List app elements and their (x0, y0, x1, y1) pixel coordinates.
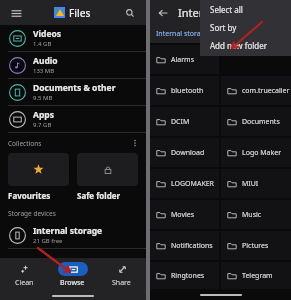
staticText: Music (242, 210, 262, 220)
staticText: Apps (33, 109, 54, 121)
staticText: Documents & other (33, 82, 116, 94)
staticText: Ringtones (171, 271, 205, 281)
button[interactable]: DCIM (150, 107, 219, 136)
staticText: Clean (15, 278, 34, 288)
staticText: Documents (242, 117, 280, 127)
button[interactable]: Telegram (221, 262, 291, 289)
button[interactable]: MIUI (221, 169, 291, 198)
staticText: Download (171, 148, 205, 158)
button[interactable]: Menu (8, 5, 24, 21)
staticText: Movies (171, 210, 195, 220)
button[interactable]: Add new folder (210, 36, 291, 54)
staticText: Favourites (8, 190, 51, 201)
staticText: Audio (33, 55, 58, 67)
staticText: Select all (210, 4, 243, 15)
staticText: Notifications (171, 241, 213, 251)
staticText: Add new folder (210, 40, 268, 51)
button[interactable]: Notifications (150, 231, 219, 260)
button[interactable]: Browse (48, 258, 97, 291)
staticText: com.truecaller (242, 86, 290, 96)
button[interactable]: Music (221, 200, 291, 229)
button[interactable]: Download (150, 138, 219, 167)
button[interactable]: Videos (0, 25, 146, 51)
button[interactable]: Pictures (221, 231, 291, 260)
staticText: MIUI (242, 179, 259, 189)
staticText: Collections (8, 139, 42, 148)
staticText: bluetooth (171, 86, 204, 96)
staticText: 9.7 GB (33, 121, 52, 129)
staticText: Internal s (178, 5, 228, 20)
button[interactable]: Movies (150, 200, 219, 229)
staticText: Internal storage (156, 29, 209, 39)
button[interactable]: Ringtones (150, 262, 219, 289)
staticText: 133 MB (33, 67, 55, 75)
staticText: Files (69, 6, 91, 20)
button[interactable]: Logo Maker (221, 138, 291, 167)
button[interactable]: Safe folder (77, 153, 138, 201)
staticText: Browse (60, 278, 85, 288)
button[interactable]: Documents & other (0, 79, 146, 105)
button[interactable]: Internal storage (0, 222, 146, 248)
staticText: Storage devices (8, 209, 56, 218)
button[interactable]: Audio (0, 52, 146, 78)
button[interactable]: Back (156, 6, 170, 20)
staticText: 21 GB free (33, 237, 63, 245)
staticText: LOGOMAKER (171, 179, 214, 189)
staticText: Videos (33, 28, 62, 40)
staticText: Share (112, 278, 131, 288)
button[interactable]: Favourites (8, 153, 69, 201)
staticText: Telegram (242, 271, 273, 281)
button[interactable]: Search (122, 5, 138, 21)
button[interactable]: LOGOMAKER (150, 169, 219, 198)
staticText: Logo Maker (242, 148, 282, 158)
staticText: 9.5 MB (33, 94, 53, 102)
staticText: Internal storage (33, 225, 103, 237)
button[interactable]: Clean (0, 258, 48, 291)
button[interactable]: Alarms (150, 45, 219, 74)
staticText: 1.4 GB (33, 40, 52, 48)
button[interactable]: Documents (221, 107, 291, 136)
button[interactable]: bluetooth (150, 76, 219, 105)
button[interactable]: com.truecaller (221, 76, 291, 105)
button[interactable]: Apps (0, 106, 146, 132)
button[interactable]: Select all (210, 0, 291, 18)
staticText: Safe folder (77, 190, 121, 201)
button[interactable]: More options (128, 136, 142, 150)
staticText: Sort by (210, 22, 237, 33)
staticText: DCIM (171, 117, 190, 127)
button[interactable]: Sort by (210, 18, 291, 36)
staticText: Alarms (171, 55, 194, 65)
button[interactable]: Share (97, 258, 146, 291)
staticText: Pictures (242, 241, 269, 251)
